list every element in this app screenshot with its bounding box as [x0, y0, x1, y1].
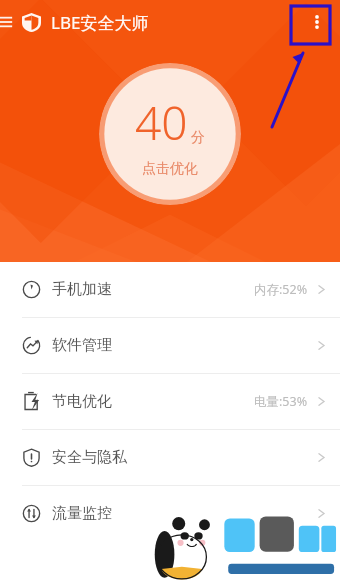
- button[interactable]: 安全与隐私: [0, 430, 340, 485]
- staticText: LBE安全大师: [51, 11, 149, 34]
- button[interactable]: 流量监控: [0, 486, 340, 541]
- staticText: 软件管理: [52, 336, 112, 355]
- button[interactable]: More options: [294, 0, 340, 44]
- staticText: 40: [135, 91, 188, 154]
- staticText: 内存:52%: [254, 281, 308, 298]
- staticText: 节电优化: [52, 392, 112, 411]
- staticText: 安全与隐私: [52, 448, 127, 467]
- staticText: 手机加速: [52, 280, 112, 299]
- staticText: 电量:53%: [254, 393, 308, 410]
- button[interactable]: 节电优化: [0, 374, 340, 429]
- button[interactable]: 软件管理: [0, 318, 340, 373]
- button[interactable]: 手机加速: [0, 262, 340, 317]
- staticText: 流量监控: [52, 504, 112, 523]
- staticText: 点击优化: [142, 160, 198, 178]
- staticText: 分: [191, 129, 205, 147]
- button[interactable]: Menu: [0, 0, 20, 44]
- button[interactable]: 40: [99, 63, 241, 205]
